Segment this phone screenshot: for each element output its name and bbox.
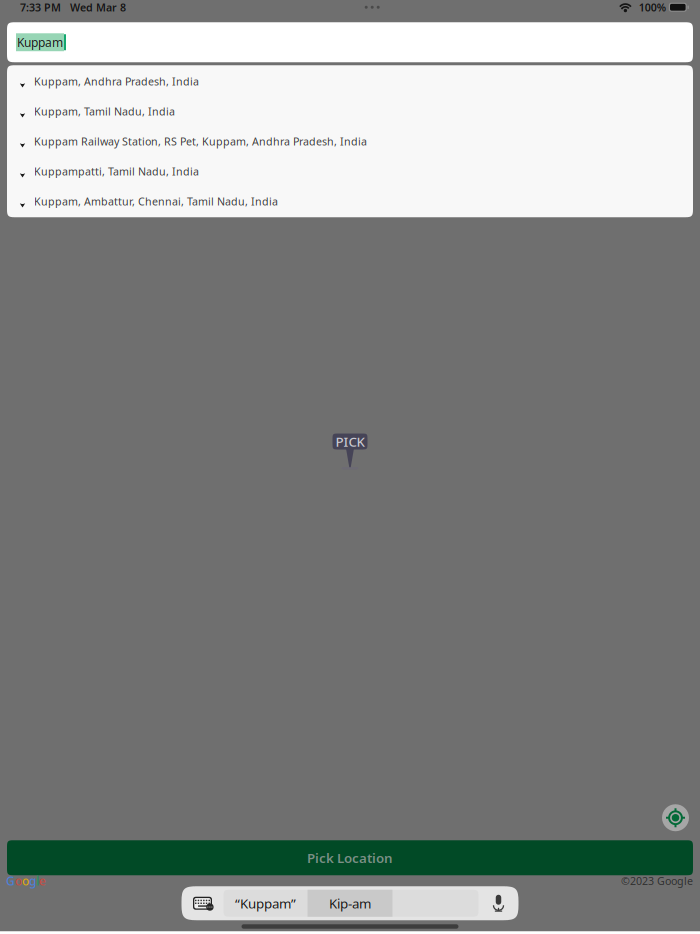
staticText: 7:33 PM (20, 0, 61, 14)
staticText: o (22, 873, 29, 889)
staticText: Kip-am (329, 894, 371, 912)
staticText: Kuppam Railway Station, RS Pet, Kuppam, … (34, 134, 367, 148)
button[interactable]: Kuppam Railway Station, RS Pet, Kuppam, … (7, 126, 693, 156)
staticText: Kuppam, Andhra Pradesh, India (34, 74, 199, 88)
staticText: e (39, 873, 46, 889)
staticText: g (29, 873, 36, 889)
button[interactable]: Pick Location (7, 840, 693, 875)
staticText: Pick Location (307, 849, 393, 867)
button[interactable]: My Location (662, 804, 689, 831)
button[interactable]: Kip-am (307, 890, 392, 917)
staticText: Wed Mar 8 (61, 0, 126, 14)
staticText: Kuppam, Tamil Nadu, India (34, 104, 175, 118)
button[interactable]: Kuppam, Tamil Nadu, India (7, 96, 693, 126)
staticText: o (15, 873, 22, 889)
staticText: 100% (639, 0, 666, 14)
button[interactable]: Kuppam, Andhra Pradesh, India (7, 66, 693, 96)
staticText: l (36, 873, 39, 889)
staticText: Kuppampatti, Tamil Nadu, India (34, 164, 199, 178)
staticText: G (6, 873, 15, 889)
staticText: PICK (335, 433, 364, 450)
button[interactable]: Kuppampatti, Tamil Nadu, India (7, 156, 693, 186)
staticText: Kuppam (17, 34, 63, 50)
button[interactable]: Hide Keyboard (181, 886, 223, 920)
staticText: “Kuppam” (235, 894, 296, 912)
staticText: ©2023 Google (621, 874, 693, 888)
button[interactable]: “Kuppam” (223, 890, 307, 917)
button[interactable]: Dictate (478, 886, 518, 920)
staticText: Kuppam, Ambattur, Chennai, Tamil Nadu, I… (34, 194, 278, 208)
button[interactable]: Kuppam, Ambattur, Chennai, Tamil Nadu, I… (7, 186, 693, 216)
